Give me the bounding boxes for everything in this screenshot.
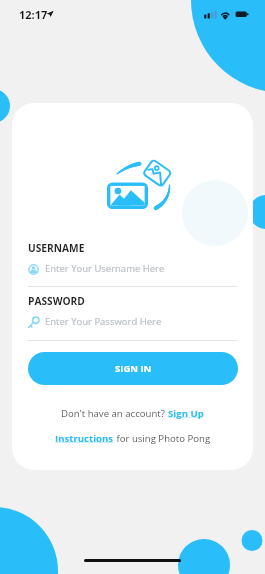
button[interactable]: SIGN IN xyxy=(28,352,238,385)
staticText: Sign Up xyxy=(168,407,204,420)
button[interactable]: Sign Up xyxy=(168,407,204,420)
staticText: SIGN IN xyxy=(115,362,152,375)
staticText: USERNAME xyxy=(28,241,85,255)
staticText: for using Photo Pong xyxy=(114,432,211,445)
staticText: PASSWORD xyxy=(28,294,85,308)
button[interactable]: Instructions xyxy=(55,432,114,445)
staticText: Instructions xyxy=(55,432,114,445)
staticText: Enter Your Password Here xyxy=(45,315,162,328)
staticText: 12:17 xyxy=(19,7,48,22)
staticText: Don't have an account? xyxy=(61,407,168,420)
staticText: Enter Your Username Here xyxy=(45,262,165,275)
